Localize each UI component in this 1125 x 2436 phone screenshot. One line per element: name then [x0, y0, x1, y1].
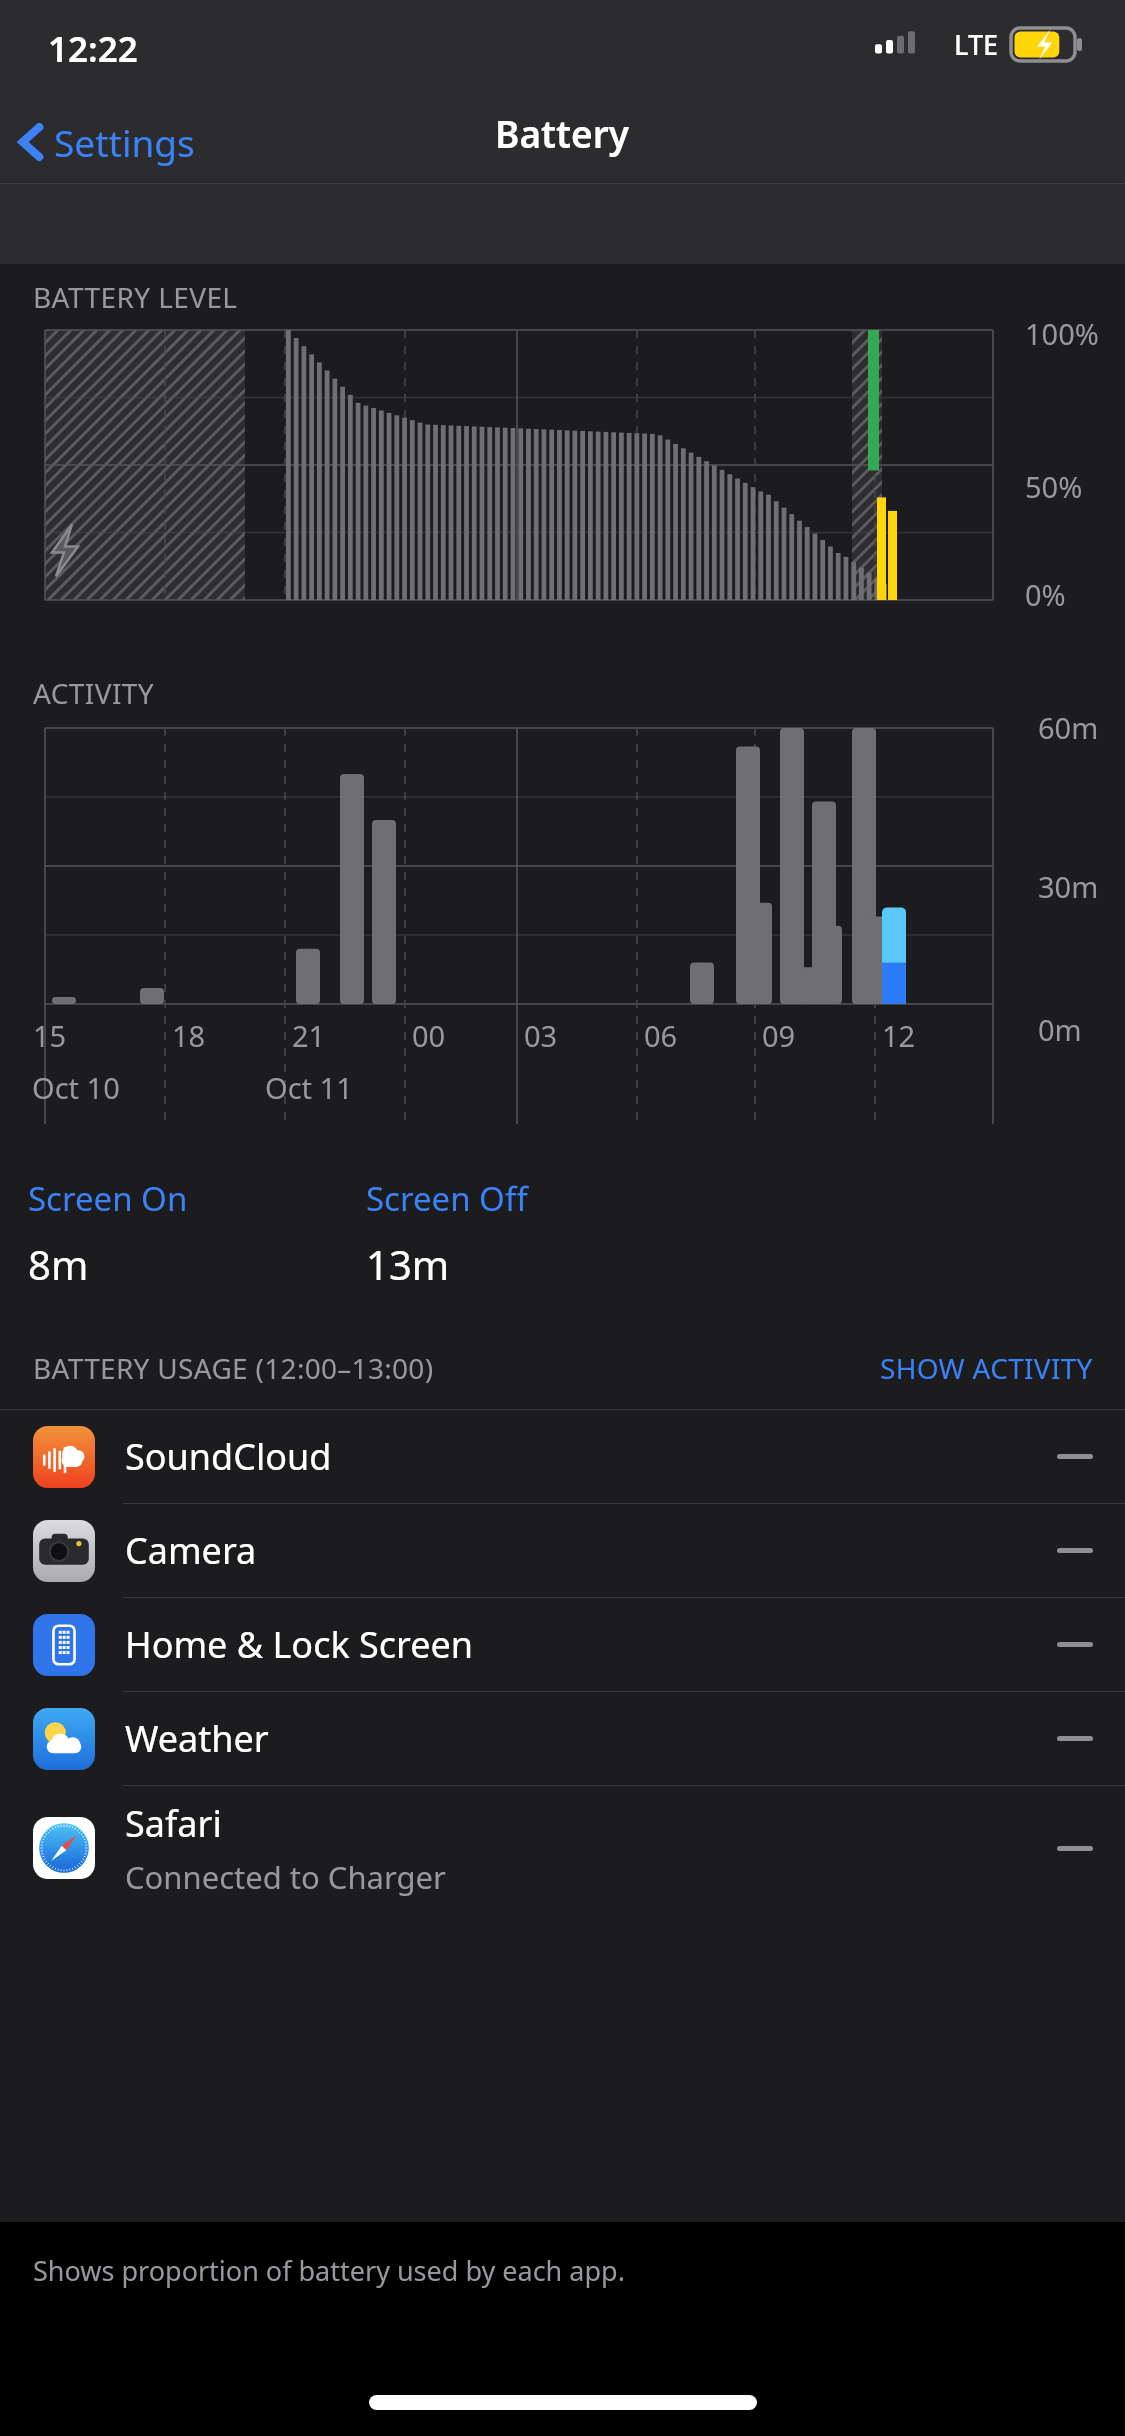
staticText: Oct 11: [265, 1068, 353, 1107]
button[interactable]: Camera: [0, 1504, 1125, 1597]
staticText: 00: [412, 1016, 446, 1055]
staticText: Connected to Charger: [125, 1856, 446, 1898]
staticText: LTE: [954, 26, 999, 63]
staticText: Safari: [125, 1799, 222, 1848]
staticText: SoundCloud: [125, 1432, 332, 1481]
staticText: BATTERY LEVEL: [33, 278, 238, 316]
staticText: 06: [644, 1016, 678, 1055]
staticText: 100%: [1025, 314, 1099, 353]
staticText: SHOW ACTIVITY: [880, 1349, 1093, 1387]
staticText: BATTERY USAGE (12:00–13:00): [33, 1349, 434, 1387]
staticText: 0%: [1025, 575, 1066, 614]
button[interactable]: Weather: [0, 1692, 1125, 1785]
staticText: Settings: [54, 117, 195, 167]
staticText: Screen On: [28, 1176, 188, 1221]
button[interactable]: Safari: [0, 1786, 1125, 1910]
button[interactable]: SHOW ACTIVITY: [880, 1349, 1093, 1387]
button[interactable]: Settings: [0, 100, 195, 184]
staticText: Weather: [125, 1714, 269, 1763]
staticText: 13m: [366, 1237, 450, 1291]
staticText: 50%: [1025, 467, 1083, 506]
staticText: 18: [172, 1016, 206, 1055]
staticText: 60m: [1038, 708, 1099, 747]
button[interactable]: Home & Lock Screen: [0, 1598, 1125, 1691]
button[interactable]: SoundCloud: [0, 1410, 1125, 1503]
staticText: ACTIVITY: [33, 674, 154, 712]
staticText: Camera: [125, 1526, 257, 1575]
staticText: 0m: [1038, 1010, 1082, 1049]
staticText: Shows proportion of battery used by each…: [33, 2252, 625, 2289]
staticText: 30m: [1038, 867, 1099, 906]
staticText: Oct 10: [32, 1068, 120, 1107]
staticText: 15: [33, 1016, 67, 1055]
staticText: 09: [762, 1016, 796, 1055]
staticText: Home & Lock Screen: [125, 1620, 474, 1669]
staticText: 12: [882, 1016, 916, 1055]
staticText: 8m: [28, 1237, 89, 1291]
staticText: 12:22: [48, 25, 138, 73]
staticText: Battery: [495, 108, 630, 158]
staticText: 21: [292, 1016, 326, 1055]
staticText: Screen Off: [366, 1176, 528, 1221]
staticText: 03: [524, 1016, 558, 1055]
